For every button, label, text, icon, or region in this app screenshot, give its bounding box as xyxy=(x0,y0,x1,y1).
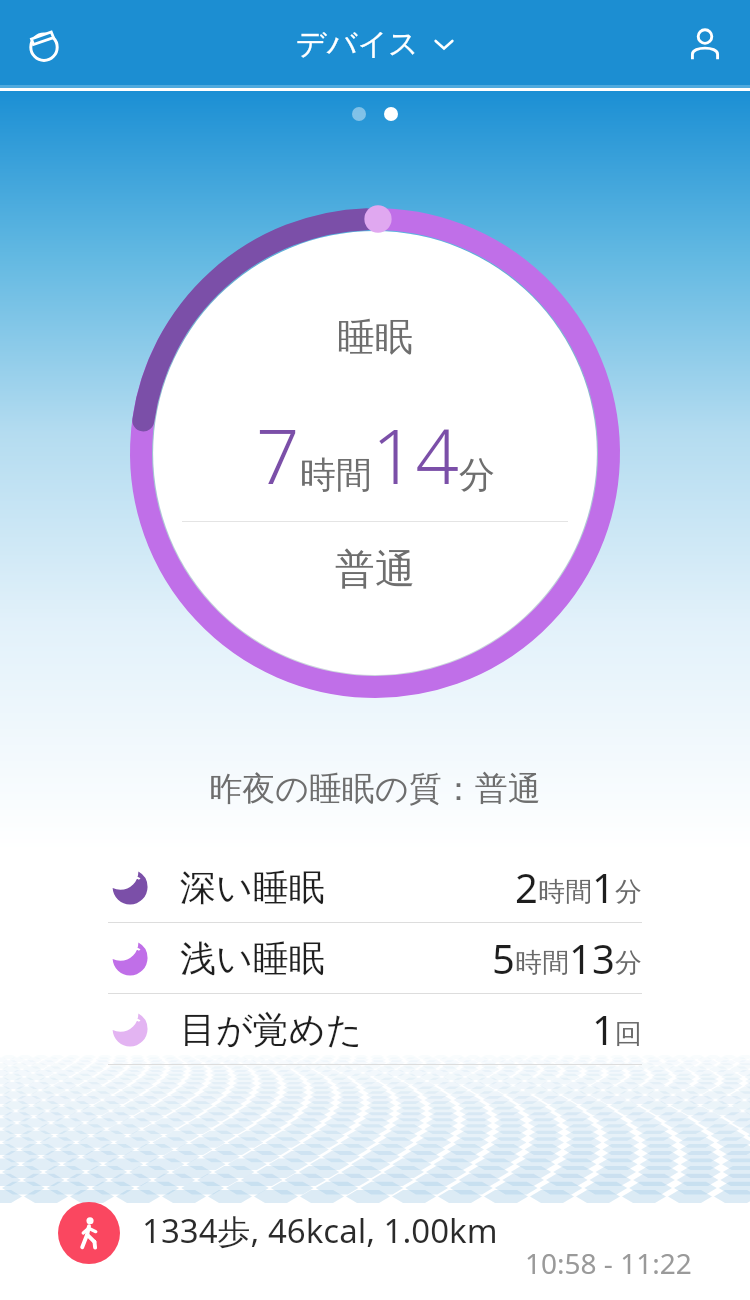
staticText: 時間 xyxy=(515,946,569,980)
staticText: 時間 xyxy=(538,875,592,909)
staticText: 7 xyxy=(256,403,300,507)
staticText: 時間 xyxy=(300,452,372,497)
staticText: 13 xyxy=(569,931,615,985)
staticText: 回 xyxy=(615,1017,642,1051)
staticText: 普通 xyxy=(335,544,415,594)
staticText: 分 xyxy=(615,875,642,909)
staticText: 分 xyxy=(615,946,642,980)
staticText: 睡眠 xyxy=(337,313,413,361)
staticText: 昨夜の睡眠の質：普通 xyxy=(0,768,750,810)
staticText: 深い睡眠 xyxy=(180,865,325,910)
button[interactable]: Profile xyxy=(676,15,734,73)
staticText: 分 xyxy=(459,452,495,497)
button[interactable]: 浅い睡眠 xyxy=(0,923,750,993)
staticText: 14 xyxy=(372,403,459,507)
staticText: 1 xyxy=(592,860,615,914)
button[interactable]: 1334歩, 46kcal, 1.00km xyxy=(0,1190,750,1264)
button[interactable]: 深い睡眠 xyxy=(0,852,750,922)
staticText: 1 xyxy=(592,1002,615,1056)
staticText: 5 xyxy=(492,931,515,985)
staticText: 目が覚めた xyxy=(180,1007,363,1052)
staticText: デバイス xyxy=(296,25,419,63)
button[interactable]: 目が覚めた xyxy=(0,994,750,1064)
staticText: 2 xyxy=(515,860,538,914)
staticText: 10:58 - 11:22 xyxy=(525,1244,692,1282)
button[interactable]: Device xyxy=(14,14,74,74)
staticText: 1334歩, 46kcal, 1.00km xyxy=(142,1208,498,1253)
button[interactable]: デバイス xyxy=(296,25,455,63)
button[interactable]: 睡眠 xyxy=(130,208,620,698)
staticText: 浅い睡眠 xyxy=(180,936,325,981)
